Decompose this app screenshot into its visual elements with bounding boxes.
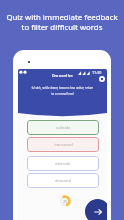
staticText: transcend — [54, 142, 73, 147]
staticText: 11:30 — [92, 70, 102, 75]
button[interactable]: transcend — [27, 137, 99, 152]
button[interactable]: subside — [27, 120, 99, 135]
staticText: obtrude — [55, 161, 71, 166]
button[interactable]: abscond — [27, 173, 99, 188]
staticText: subside — [56, 125, 71, 130]
button[interactable]: Next question — [85, 199, 107, 220]
staticText: (v) sink, settle down; become less activ… — [20, 86, 105, 96]
button[interactable]: obtrude — [27, 156, 99, 171]
staticText: abscond — [55, 178, 71, 183]
staticText: One word for: — [18, 74, 107, 78]
staticText: Quiz with immediate feedback to filter d… — [0, 12, 124, 32]
staticText: 25 — [63, 199, 68, 204]
